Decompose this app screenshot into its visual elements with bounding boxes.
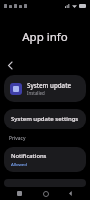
staticText: App info xyxy=(0,29,90,45)
staticText: Privacy xyxy=(9,135,26,142)
button[interactable]: Back xyxy=(2,57,18,73)
staticText: System update xyxy=(27,81,72,89)
button[interactable]: Home xyxy=(39,187,52,200)
button[interactable]: Notifications xyxy=(4,147,86,172)
staticText: Notifications xyxy=(11,152,47,160)
button[interactable]: System update xyxy=(4,75,86,102)
staticText: Allowed xyxy=(11,161,27,167)
button[interactable]: Recent apps xyxy=(13,187,26,200)
staticText: Installed xyxy=(27,90,45,96)
staticText: System update settings xyxy=(11,115,79,123)
button[interactable]: Back xyxy=(64,187,77,200)
button[interactable]: Permissions xyxy=(4,179,86,187)
button[interactable]: System update settings xyxy=(4,109,86,129)
